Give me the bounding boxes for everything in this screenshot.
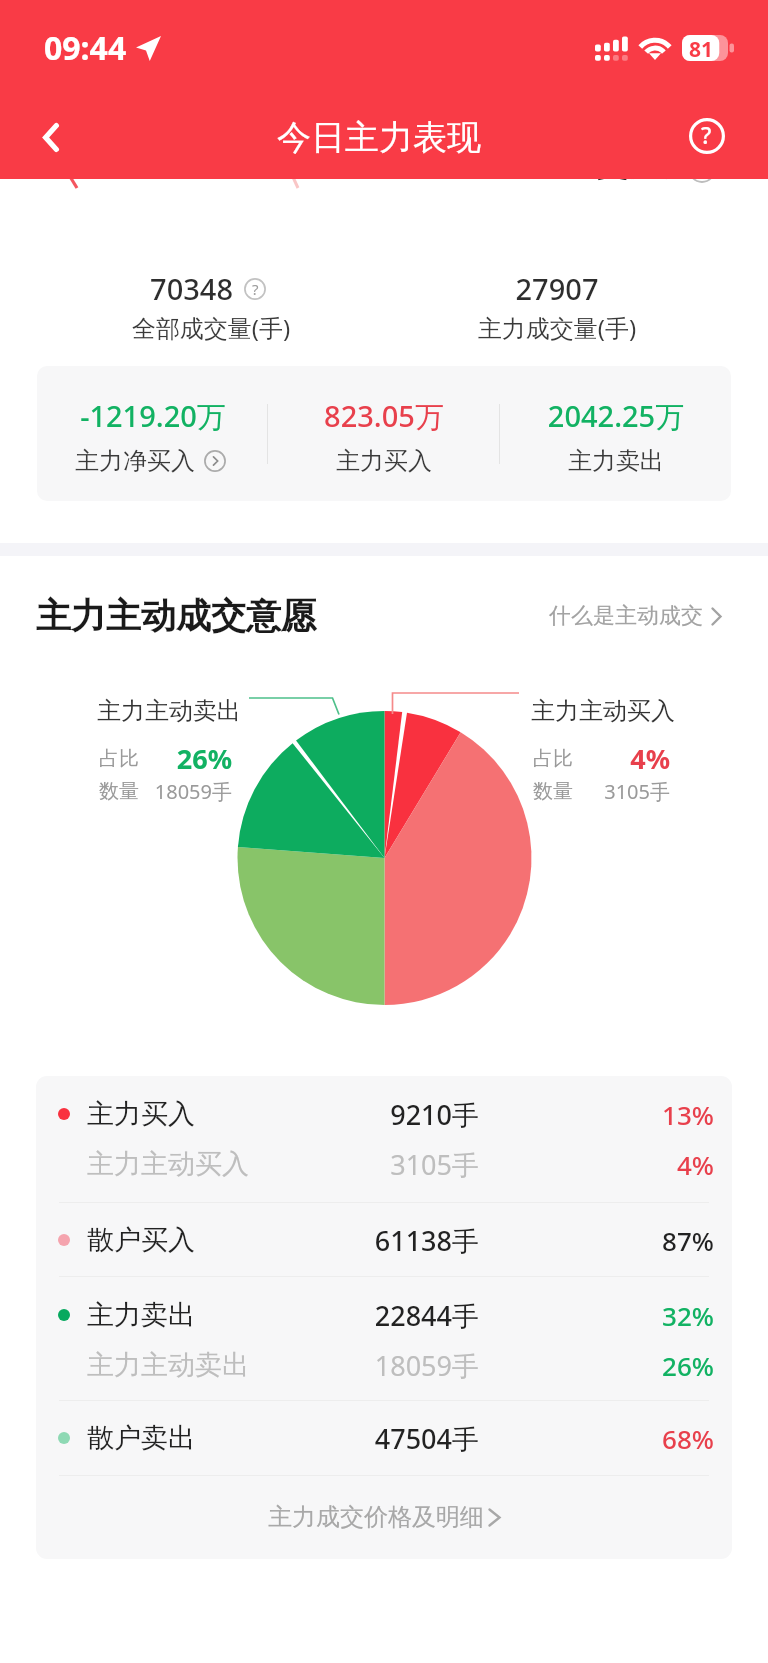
staticText: 68% <box>594 1421 714 1456</box>
staticText: 81 <box>682 35 720 61</box>
staticText: 主力卖出 <box>500 446 732 476</box>
staticText: 占比 <box>533 746 603 771</box>
staticText: 主力主动买入 <box>531 696 701 726</box>
staticText: 26% <box>594 1348 714 1383</box>
staticText: 主力主动成交意愿 <box>36 594 316 638</box>
button[interactable] <box>36 1076 732 1202</box>
staticText: 22844手 <box>319 1297 479 1334</box>
staticText: 主力买入 <box>87 1097 287 1131</box>
staticText: 主力净买入 <box>75 446 195 476</box>
staticText: 今日主力表现 <box>277 116 481 159</box>
staticText: 2042.25万 <box>500 396 732 436</box>
button[interactable] <box>36 1202 732 1276</box>
staticText: 18059手 <box>132 778 232 805</box>
staticText: 什么是主动成交 <box>549 602 703 630</box>
staticText: 9210手 <box>319 1096 479 1133</box>
staticText: 3105手 <box>319 1146 479 1183</box>
staticText: 数量 <box>533 779 603 804</box>
staticText: 18059手 <box>319 1347 479 1384</box>
staticText: 13% <box>594 1097 714 1132</box>
staticText: 09:44 <box>44 26 127 70</box>
button[interactable] <box>36 1400 732 1475</box>
staticText: 47504手 <box>319 1420 479 1457</box>
staticText: 主力主动买入 <box>87 1147 307 1181</box>
staticText: 3105手 <box>570 778 670 805</box>
staticText: 823.05万 <box>268 396 500 436</box>
staticText: 主力成交占比 <box>497 143 695 185</box>
staticText: 主力主动卖出 <box>97 696 267 726</box>
staticText: ? <box>252 279 259 299</box>
staticText: 32% <box>594 1298 714 1333</box>
staticText: 全部成交量(手) <box>91 311 331 344</box>
staticText: 4% <box>594 1147 714 1182</box>
staticText: 主力买入 <box>268 446 500 476</box>
staticText: 散户买入 <box>87 1223 287 1257</box>
staticText: ? <box>701 119 712 150</box>
staticText: 主力卖出 <box>87 1298 287 1332</box>
staticText: 主力成交量(手) <box>437 311 677 344</box>
button[interactable]: Help <box>665 94 748 177</box>
staticText: -1219.20万 <box>37 396 269 436</box>
staticText: 4% <box>570 740 670 777</box>
staticText: 26% <box>132 740 232 777</box>
button[interactable]: Back <box>9 96 92 179</box>
staticText: 占比 <box>99 746 169 771</box>
staticText: 27907 <box>477 269 637 308</box>
staticText: 散户卖出 <box>87 1421 287 1455</box>
staticText: 70348 <box>113 269 233 308</box>
staticText: 数量 <box>99 779 169 804</box>
button[interactable]: 什么是主动成交 <box>549 586 722 646</box>
staticText: 主力成交价格及明细 <box>268 1502 508 1532</box>
button[interactable]: 主力净买入 <box>75 443 226 479</box>
staticText: 主力主动卖出 <box>87 1348 307 1382</box>
staticText: 87% <box>594 1223 714 1258</box>
staticText: 61138手 <box>319 1222 479 1259</box>
button[interactable] <box>36 1276 732 1400</box>
button[interactable] <box>36 1475 732 1559</box>
